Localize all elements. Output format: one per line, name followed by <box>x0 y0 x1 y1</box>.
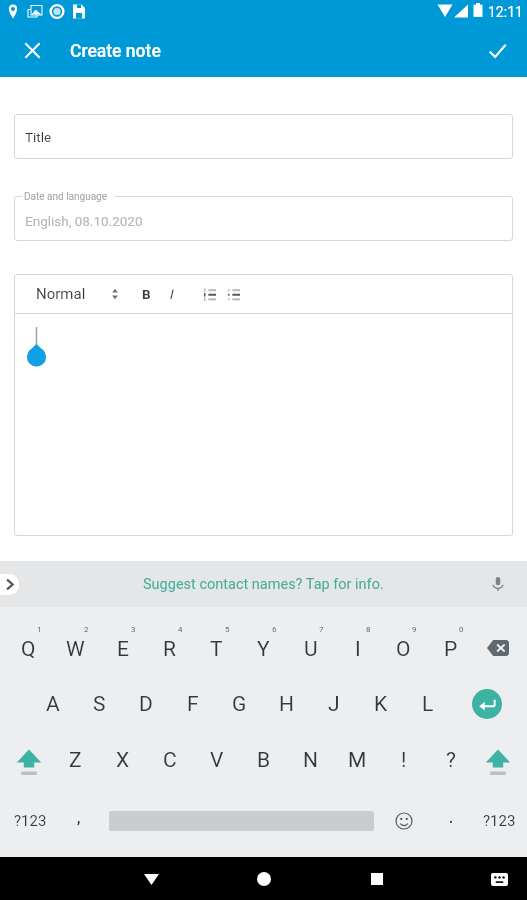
button[interactable]: Space <box>109 793 374 849</box>
staticText: ? <box>446 748 456 773</box>
button[interactable]: Home <box>244 859 284 899</box>
button[interactable]: C <box>146 732 193 788</box>
button[interactable]: Bold <box>132 274 160 313</box>
staticText: 8 <box>366 625 371 634</box>
button[interactable]: Italic <box>157 274 185 313</box>
button[interactable]: , <box>59 793 99 849</box>
button[interactable]: S <box>76 676 123 732</box>
button[interactable]: I <box>334 620 381 676</box>
button[interactable]: Enter <box>459 676 515 732</box>
staticText: 1 <box>37 625 42 634</box>
button[interactable]: Shift <box>5 732 52 788</box>
staticText: English, 08.10.2020 <box>25 213 143 229</box>
staticText: O <box>396 637 411 662</box>
staticText: F <box>187 692 199 717</box>
staticText: V <box>210 748 224 773</box>
button[interactable]: Q <box>5 620 52 676</box>
staticText: 7 <box>319 625 324 634</box>
staticText: J <box>328 692 340 717</box>
button[interactable]: Z <box>52 732 99 788</box>
staticText: C <box>163 748 177 773</box>
button[interactable]: B <box>240 732 287 788</box>
button[interactable]: W <box>52 620 99 676</box>
button[interactable]: G <box>216 676 263 732</box>
button[interactable]: F <box>169 676 216 732</box>
button[interactable]: Shift <box>474 732 521 788</box>
button[interactable]: Back <box>131 859 171 899</box>
staticText: S <box>93 692 106 717</box>
button[interactable]: Close <box>12 25 52 77</box>
button[interactable]: Normal <box>28 274 128 313</box>
staticText: . <box>449 810 454 826</box>
staticText: E <box>117 637 129 662</box>
button[interactable]: M <box>334 732 381 788</box>
staticText: L <box>422 692 434 717</box>
staticText: Y <box>257 637 270 662</box>
button[interactable]: Date and language <box>14 196 513 241</box>
staticText: W <box>66 637 85 662</box>
staticText: Suggest contact names? Tap for info. <box>143 576 384 593</box>
button[interactable]: H <box>263 676 310 732</box>
staticText: Z <box>69 748 82 773</box>
staticText: R <box>163 637 176 662</box>
staticText: Create note <box>70 41 161 62</box>
button[interactable]: L <box>404 676 451 732</box>
button[interactable]: Recents <box>357 859 397 899</box>
button[interactable]: T <box>193 620 240 676</box>
button[interactable]: X <box>99 732 146 788</box>
button[interactable]: Expand suggestions <box>0 574 19 595</box>
button[interactable]: ! <box>380 732 427 788</box>
staticText: T <box>210 637 223 662</box>
staticText: 3 <box>131 625 136 634</box>
button[interactable]: D <box>122 676 169 732</box>
staticText: , <box>77 810 81 826</box>
staticText: 5 <box>225 625 230 634</box>
staticText: U <box>304 637 318 662</box>
button[interactable]: ? <box>427 732 474 788</box>
staticText: D <box>139 692 153 717</box>
button[interactable]: Symbols <box>467 793 527 849</box>
staticText: 2 <box>84 625 89 634</box>
button[interactable]: Backspace <box>474 620 521 676</box>
button[interactable]: Bulleted list <box>220 274 248 313</box>
button[interactable]: Title <box>14 114 513 159</box>
button[interactable]: Numbered list <box>196 274 224 313</box>
button[interactable]: Symbols <box>0 793 62 849</box>
staticText: ! <box>401 748 407 773</box>
button[interactable]: Voice input <box>484 570 512 598</box>
button[interactable] <box>14 314 513 536</box>
staticText: 12:11 <box>488 4 523 20</box>
button[interactable]: R <box>146 620 193 676</box>
staticText: Date and language <box>24 191 108 203</box>
button[interactable]: Y <box>240 620 287 676</box>
staticText: Normal <box>36 285 86 303</box>
staticText: 4 <box>178 625 183 634</box>
button[interactable]: A <box>29 676 76 732</box>
staticText: I <box>355 637 361 662</box>
button[interactable]: P <box>427 620 474 676</box>
button[interactable]: K <box>357 676 404 732</box>
button[interactable]: Emoji <box>381 793 427 849</box>
staticText: 0 <box>459 625 464 634</box>
button[interactable]: . <box>431 793 471 849</box>
staticText: Q <box>21 637 36 662</box>
staticText: M <box>348 748 367 773</box>
staticText: X <box>116 748 130 773</box>
staticText: A <box>46 692 60 717</box>
staticText: B <box>257 748 271 773</box>
staticText: P <box>444 637 458 662</box>
staticText: ?123 <box>14 812 47 830</box>
button[interactable]: E <box>99 620 146 676</box>
staticText: H <box>279 692 294 717</box>
button[interactable]: O <box>380 620 427 676</box>
staticText: I <box>169 286 173 302</box>
button[interactable]: J <box>310 676 357 732</box>
button[interactable]: N <box>287 732 334 788</box>
button[interactable]: U <box>287 620 334 676</box>
button[interactable]: Save note <box>477 31 517 71</box>
staticText: N <box>303 748 318 773</box>
staticText: Title <box>25 129 52 145</box>
button[interactable]: V <box>193 732 240 788</box>
button[interactable]: Switch keyboard <box>483 863 515 895</box>
staticText: 9 <box>412 625 417 634</box>
